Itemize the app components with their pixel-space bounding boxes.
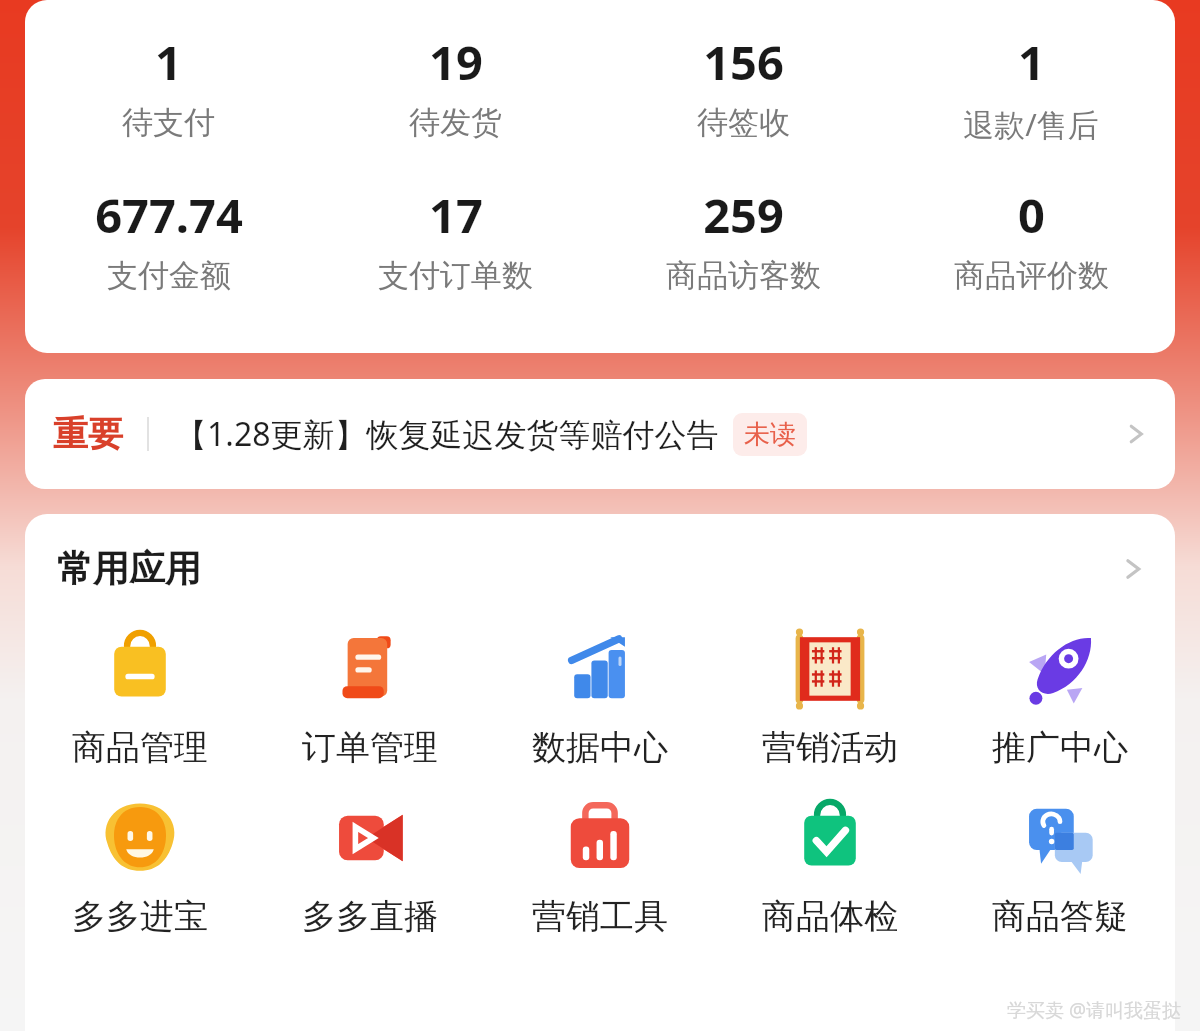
- staticText: 17: [429, 183, 483, 247]
- other: Open: [1117, 553, 1149, 585]
- staticText: 商品答疑: [992, 895, 1128, 938]
- button[interactable]: 156: [599, 30, 887, 142]
- staticText: 商品评价数: [954, 256, 1109, 295]
- staticText: 待签收: [697, 103, 790, 142]
- button[interactable]: 常用应用: [57, 546, 1149, 591]
- button[interactable]: 多多直播: [255, 795, 485, 938]
- staticText: 营销活动: [762, 726, 898, 769]
- staticText: 订单管理: [302, 726, 438, 769]
- staticText: 156: [703, 30, 784, 94]
- staticText: 1: [1018, 30, 1045, 94]
- staticText: 营销工具: [532, 895, 668, 938]
- staticText: 1: [155, 30, 182, 94]
- button[interactable]: 多多进宝: [25, 795, 255, 938]
- staticText: 【1.28更新】恢复延迟发货等赔付公告: [175, 412, 719, 456]
- button[interactable]: 0: [887, 183, 1175, 295]
- button[interactable]: 数据中心: [485, 626, 715, 769]
- staticText: 商品访客数: [666, 256, 821, 295]
- staticText: 多多直播: [302, 895, 438, 938]
- staticText: 多多进宝: [72, 895, 208, 938]
- button[interactable]: 商品体检: [715, 795, 945, 938]
- staticText: 259: [703, 183, 784, 247]
- button[interactable]: 商品答疑: [945, 795, 1175, 938]
- staticText: 数据中心: [532, 726, 668, 769]
- staticText: 常用应用: [57, 546, 201, 591]
- button[interactable]: 推广中心: [945, 626, 1175, 769]
- staticText: 677.74: [95, 183, 243, 247]
- button[interactable]: 商品管理: [25, 626, 255, 769]
- button[interactable]: 1: [887, 30, 1175, 145]
- button[interactable]: 19: [312, 30, 599, 142]
- staticText: 支付订单数: [378, 256, 533, 295]
- staticText: 未读: [744, 418, 796, 451]
- staticText: 商品体检: [762, 895, 898, 938]
- button[interactable]: 营销活动: [715, 626, 945, 769]
- button[interactable]: 17: [312, 183, 599, 295]
- other: Open: [1121, 419, 1151, 449]
- button[interactable]: 677.74: [25, 183, 312, 295]
- staticText: 0: [1018, 183, 1045, 247]
- button[interactable]: 订单管理: [255, 626, 485, 769]
- staticText: 重要: [53, 412, 123, 456]
- staticText: 支付金额: [107, 256, 231, 295]
- button[interactable]: 营销工具: [485, 795, 715, 938]
- button[interactable]: 1: [25, 30, 312, 142]
- staticText: 商品管理: [72, 726, 208, 769]
- button[interactable]: 重要: [25, 379, 1175, 489]
- staticText: 19: [429, 30, 483, 94]
- staticText: 待发货: [409, 103, 502, 142]
- staticText: 学买卖 @请叫我蛋挞: [1007, 997, 1182, 1023]
- staticText: 待支付: [122, 103, 215, 142]
- staticText: 退款/售后: [963, 103, 1099, 145]
- staticText: 推广中心: [992, 726, 1128, 769]
- button[interactable]: 259: [599, 183, 887, 295]
